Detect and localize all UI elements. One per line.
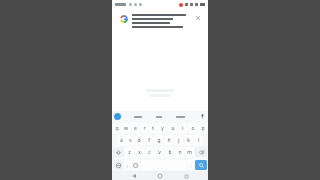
staticText: q	[115, 125, 119, 132]
button[interactable]: k	[184, 135, 193, 145]
button[interactable]: c	[145, 147, 154, 157]
button[interactable]: Emoji	[132, 160, 139, 170]
button[interactable]: i	[178, 123, 187, 133]
staticText: r	[143, 125, 146, 132]
staticText: c	[148, 149, 151, 156]
button[interactable]	[176, 116, 185, 118]
button[interactable]: b	[165, 147, 174, 157]
staticText: h	[167, 137, 171, 144]
other: Google	[119, 14, 128, 23]
button[interactable]: t	[149, 123, 157, 133]
staticText: k	[187, 137, 190, 144]
button[interactable]: .	[188, 160, 194, 170]
staticText: m	[187, 149, 192, 156]
button[interactable]: p	[198, 123, 207, 133]
button[interactable]	[156, 116, 162, 118]
button[interactable]: Search	[195, 160, 207, 170]
staticText: l	[198, 137, 200, 144]
button[interactable]: o	[188, 123, 197, 133]
staticText: y	[161, 125, 164, 132]
staticText: o	[191, 125, 195, 132]
staticText: w	[124, 125, 128, 132]
button[interactable]: g	[154, 135, 163, 145]
button[interactable]: Back	[130, 172, 138, 180]
button[interactable]: e	[131, 123, 139, 133]
button[interactable]: j	[174, 135, 183, 145]
button[interactable]: Clear	[194, 14, 201, 21]
staticText: j	[178, 137, 180, 144]
button[interactable]: Voice input	[199, 113, 206, 120]
button[interactable]: Backspace	[195, 147, 207, 157]
staticText: f	[148, 137, 150, 144]
staticText: ,	[127, 162, 129, 169]
button[interactable]: Switch language	[113, 160, 123, 170]
staticText: i	[182, 125, 184, 132]
button[interactable]: z	[125, 147, 134, 157]
staticText: z	[128, 149, 131, 156]
button[interactable]: n	[175, 147, 184, 157]
staticText: n	[178, 149, 182, 156]
staticText: v	[158, 149, 161, 156]
staticText: a	[120, 137, 123, 144]
button[interactable]: s	[126, 135, 134, 145]
staticText: u	[171, 125, 175, 132]
staticText: d	[137, 137, 141, 144]
button[interactable]: x	[135, 147, 144, 157]
button[interactable]: Recent apps	[182, 172, 190, 180]
button[interactable]: y	[158, 123, 167, 133]
button[interactable]: l	[194, 135, 203, 145]
staticText: t	[152, 125, 154, 132]
button[interactable]: f	[144, 135, 153, 145]
button[interactable]: Home	[156, 172, 164, 180]
button[interactable]: r	[140, 123, 148, 133]
button[interactable]: a	[117, 135, 125, 145]
button[interactable]: w	[122, 123, 130, 133]
staticText: p	[201, 125, 205, 132]
button[interactable]: h	[164, 135, 173, 145]
staticText: b	[168, 149, 172, 156]
button[interactable]: ,	[124, 160, 131, 170]
button[interactable]: Shift	[113, 147, 124, 157]
button[interactable]: u	[168, 123, 177, 133]
button[interactable]: Clipboard	[114, 113, 121, 120]
staticText: x	[138, 149, 141, 156]
staticText: e	[134, 125, 137, 132]
button[interactable]: Google	[115, 10, 205, 32]
staticText: .	[190, 162, 192, 169]
button[interactable]: q	[113, 123, 121, 133]
button[interactable]	[134, 116, 142, 118]
button[interactable]: m	[185, 147, 194, 157]
button[interactable]: v	[155, 147, 164, 157]
staticText: g	[157, 137, 161, 144]
button[interactable]: d	[135, 135, 143, 145]
staticText: s	[129, 137, 132, 144]
